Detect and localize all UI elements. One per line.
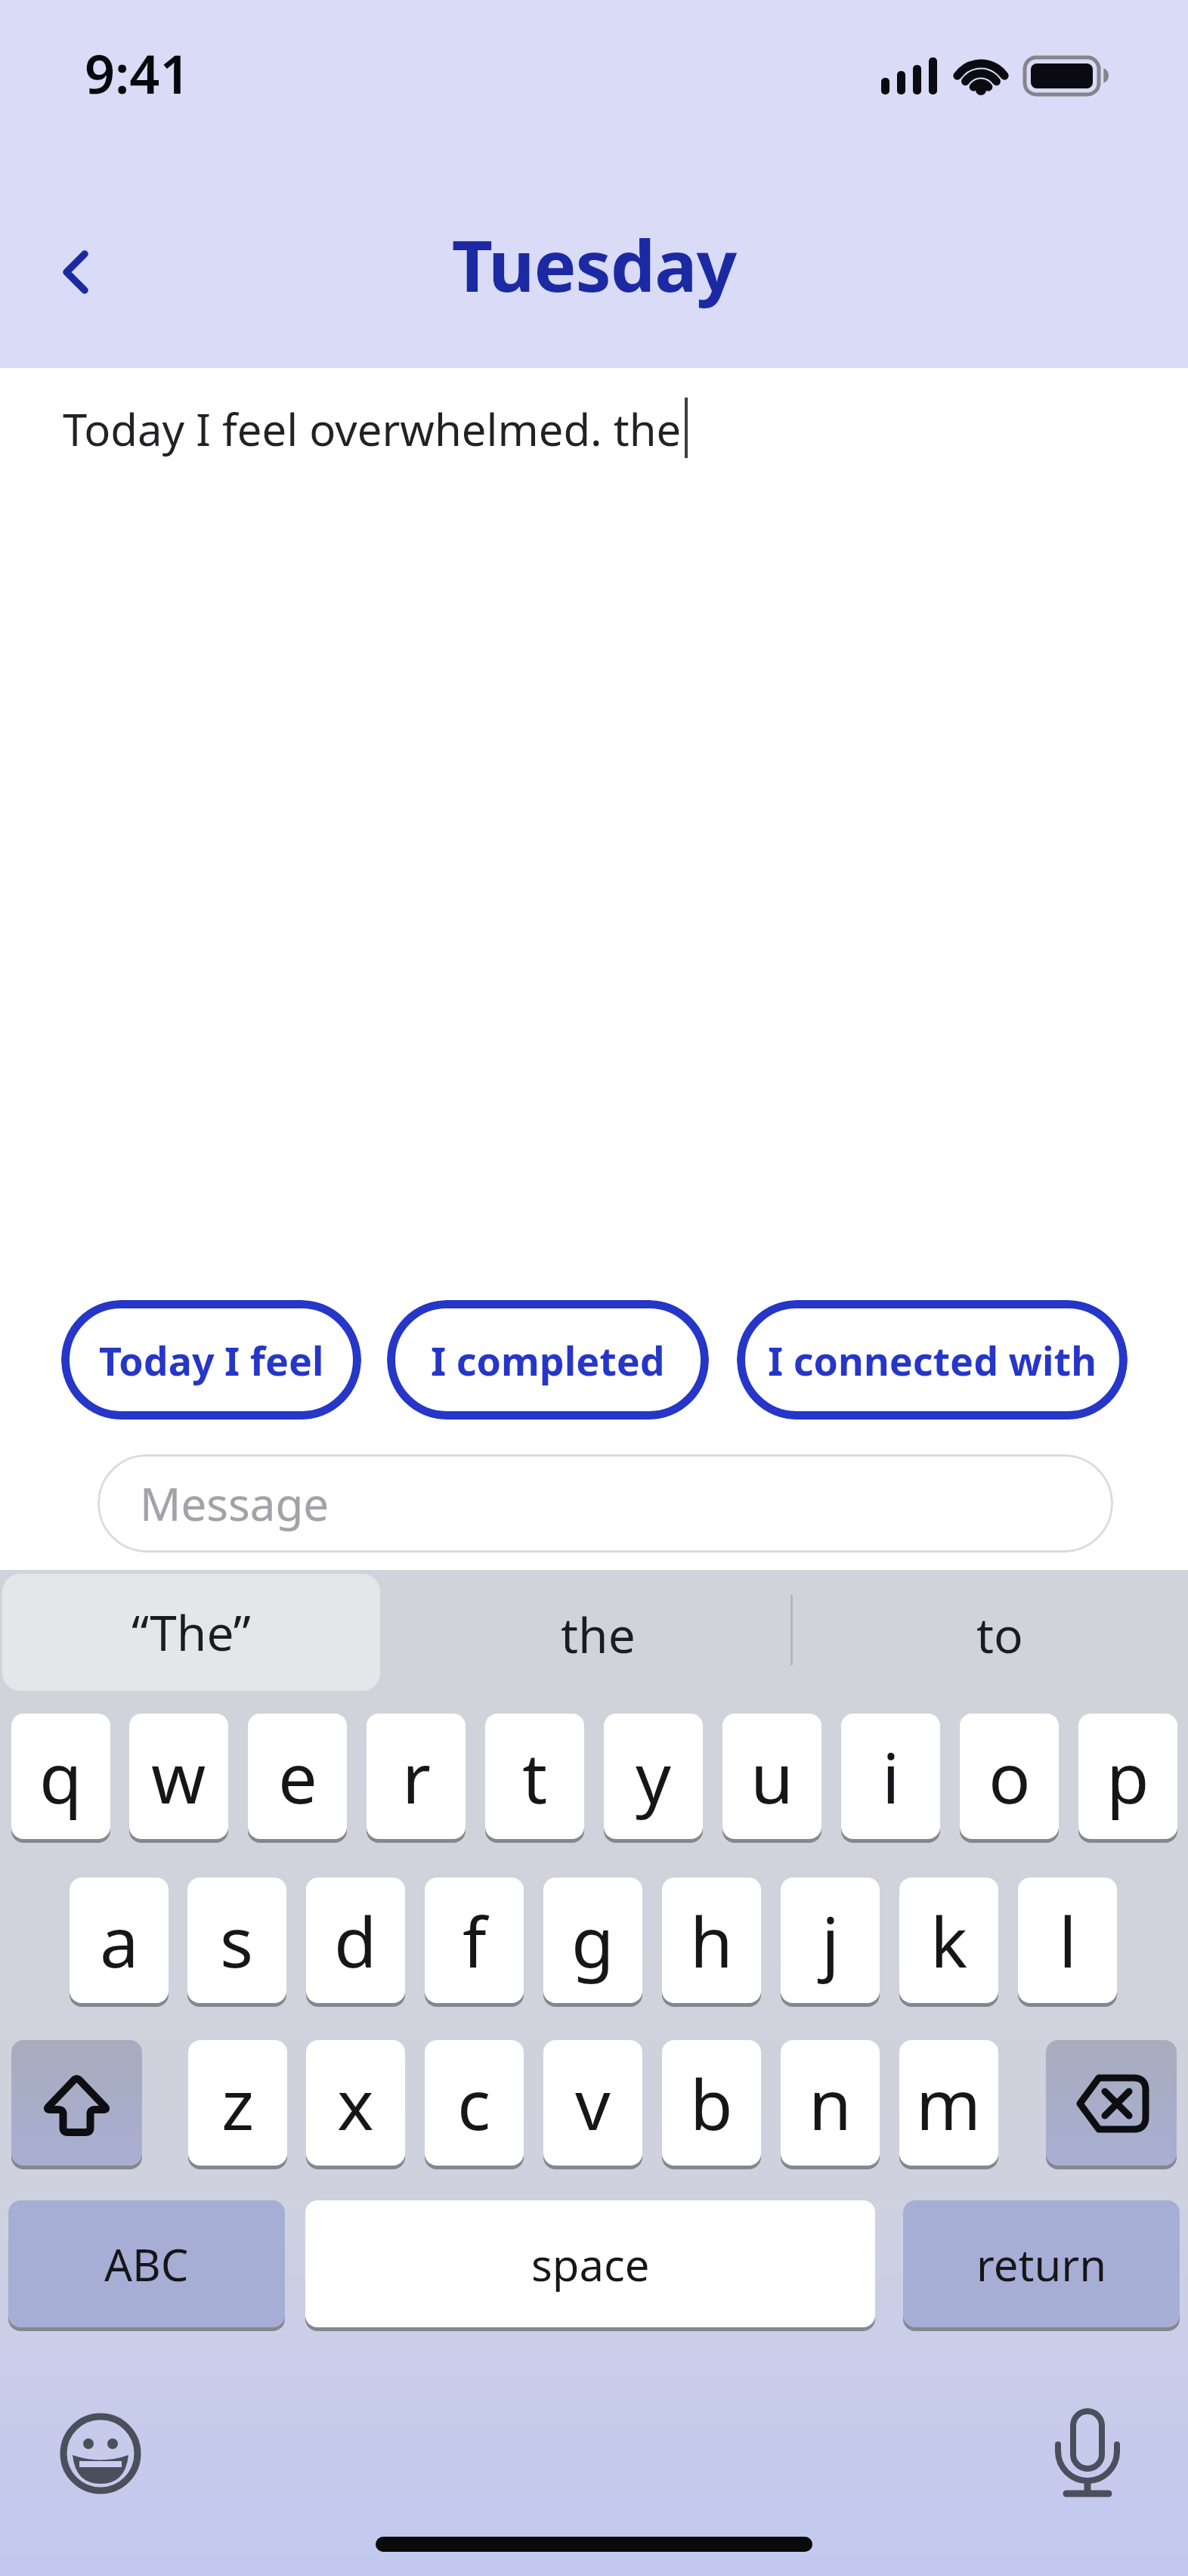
button[interactable]: y	[604, 1714, 703, 1839]
staticText: u	[750, 1729, 794, 1824]
button[interactable]: “The”	[2, 1574, 380, 1691]
button[interactable]: h	[662, 1878, 761, 2003]
staticText: e	[278, 1729, 317, 1824]
staticText: b	[690, 2056, 733, 2150]
staticText: return	[976, 2234, 1107, 2294]
staticText: i	[882, 1729, 900, 1824]
staticText: w	[151, 1729, 206, 1824]
button[interactable]: n	[781, 2040, 880, 2166]
button[interactable]: l	[1018, 1878, 1117, 2003]
staticText: “The”	[131, 1599, 251, 1665]
button[interactable]	[1047, 2405, 1128, 2503]
staticText: k	[930, 1893, 968, 1988]
button[interactable]: I connected with	[737, 1300, 1128, 1420]
staticText: g	[571, 1893, 614, 1988]
button[interactable]: d	[306, 1878, 405, 2003]
staticText: d	[334, 1893, 377, 1988]
staticText: l	[1059, 1893, 1077, 1988]
button[interactable]	[1046, 2040, 1177, 2166]
staticText: to	[976, 1602, 1023, 1667]
button[interactable]	[11, 2040, 142, 2166]
staticText: Today I feel overwhelmed. the	[63, 399, 682, 459]
staticText: I connected with	[768, 1333, 1097, 1387]
button[interactable]: ABC	[8, 2200, 285, 2327]
staticText: q	[39, 1729, 82, 1824]
button[interactable]: f	[425, 1878, 524, 2003]
staticText: z	[221, 2056, 255, 2150]
button[interactable]: v	[543, 2040, 642, 2166]
staticText: t	[522, 1729, 548, 1824]
button[interactable]: I completed	[387, 1300, 709, 1420]
staticText: the	[561, 1602, 636, 1667]
button[interactable]: Today I feel	[61, 1300, 361, 1420]
button[interactable]: z	[188, 2040, 287, 2166]
button[interactable]: space	[305, 2200, 875, 2327]
button[interactable]: c	[425, 2040, 524, 2166]
button[interactable]: i	[841, 1714, 940, 1839]
staticText: p	[1106, 1729, 1149, 1824]
staticText: I completed	[431, 1333, 665, 1387]
staticText: 9:41	[85, 37, 190, 109]
staticText: y	[636, 1729, 671, 1824]
button[interactable]: w	[129, 1714, 228, 1839]
button[interactable]: j	[781, 1878, 880, 2003]
staticText: h	[690, 1893, 733, 1988]
staticText: j	[821, 1893, 840, 1988]
staticText: a	[100, 1893, 139, 1988]
staticText: f	[463, 1893, 487, 1988]
button[interactable]: return	[903, 2200, 1180, 2327]
button[interactable]	[60, 2413, 141, 2494]
staticText: x	[337, 2056, 374, 2150]
staticText: space	[531, 2234, 650, 2294]
button[interactable]: m	[899, 2040, 998, 2166]
button[interactable]: u	[722, 1714, 821, 1839]
staticText: n	[809, 2056, 852, 2150]
button[interactable]: to	[849, 1577, 1151, 1692]
button[interactable]: s	[187, 1878, 286, 2003]
button[interactable]: Message	[97, 1454, 1113, 1553]
button[interactable]: e	[248, 1714, 347, 1839]
button[interactable]: q	[11, 1714, 110, 1839]
button[interactable]: the	[447, 1577, 749, 1692]
button[interactable]: a	[70, 1878, 169, 2003]
staticText: Today I feel	[99, 1333, 324, 1387]
button[interactable]: t	[485, 1714, 584, 1839]
staticText: s	[220, 1893, 254, 1988]
staticText: m	[916, 2056, 982, 2150]
button[interactable]: b	[662, 2040, 761, 2166]
staticText: o	[988, 1729, 1031, 1824]
button[interactable]: k	[899, 1878, 998, 2003]
button[interactable]	[42, 242, 110, 310]
button[interactable]: r	[367, 1714, 466, 1839]
button[interactable]: o	[960, 1714, 1059, 1839]
button[interactable]: g	[543, 1878, 642, 2003]
staticText: c	[457, 2056, 491, 2150]
staticText: r	[402, 1729, 431, 1824]
staticText: v	[575, 2056, 611, 2150]
staticText: Tuesday	[0, 216, 1188, 313]
button[interactable]: x	[306, 2040, 405, 2166]
button[interactable]: p	[1078, 1714, 1177, 1839]
staticText: Message	[140, 1472, 329, 1534]
staticText: ABC	[104, 2234, 189, 2294]
